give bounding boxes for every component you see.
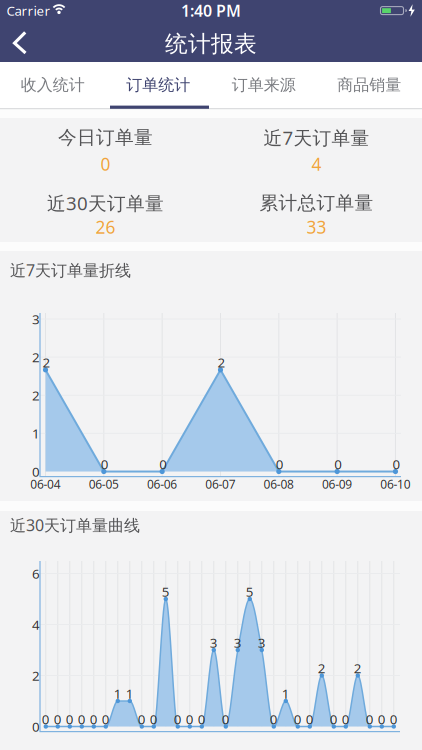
staticText: 06-10	[380, 476, 411, 492]
staticText: 06-09	[322, 476, 352, 492]
staticText: 5	[246, 583, 254, 600]
staticText: 4	[32, 616, 40, 633]
staticText: 0	[390, 710, 398, 728]
staticText: 0	[66, 710, 74, 728]
staticText: 0	[334, 455, 342, 473]
staticText: 今日订单量	[58, 126, 153, 149]
staticText: 33	[306, 215, 326, 238]
staticText: 订单来源	[232, 75, 296, 95]
staticText: 0	[42, 710, 50, 728]
button[interactable]: 订单统计	[105, 62, 211, 108]
button[interactable]: Back	[1, 26, 41, 62]
staticText: 2	[42, 353, 50, 371]
staticText: 06-06	[147, 476, 177, 492]
staticText: 6	[32, 565, 40, 582]
staticText: 5	[162, 583, 170, 600]
staticText: 2	[318, 659, 326, 677]
staticText: 3	[234, 634, 242, 651]
staticText: 统计报表	[165, 30, 257, 58]
button[interactable]: 订单来源	[211, 62, 316, 108]
staticText: 1	[282, 685, 290, 702]
staticText: 06-04	[30, 476, 61, 492]
staticText: 2	[354, 659, 362, 677]
staticText: 3	[32, 310, 40, 328]
staticText: 0	[102, 710, 110, 728]
staticText: 0	[330, 710, 338, 728]
staticText: 近7天订单量折线	[10, 259, 131, 281]
staticText: 0	[101, 455, 109, 473]
staticText: 近30天订单量	[47, 191, 164, 215]
staticText: 0	[198, 710, 206, 728]
staticText: 1	[114, 685, 122, 702]
staticText: 3	[258, 634, 266, 651]
staticText: 06-07	[205, 476, 236, 492]
staticText: 近7天订单量	[263, 125, 369, 150]
staticText: 订单统计	[126, 75, 190, 95]
staticText: 近30天订单量曲线	[10, 514, 140, 536]
staticText: 0	[270, 710, 278, 728]
staticText: 累计总订单量	[259, 191, 373, 214]
staticText: 0	[159, 455, 167, 473]
staticText: 0	[78, 710, 86, 728]
staticText: 0	[138, 710, 146, 728]
staticText: 2	[217, 353, 225, 371]
staticText: 2	[32, 667, 40, 684]
staticText: 4	[311, 152, 321, 175]
staticText: 0	[90, 710, 98, 728]
staticText: 2	[32, 386, 40, 404]
staticText: 0	[392, 455, 400, 473]
staticText: 0	[32, 718, 40, 735]
staticText: 0	[186, 710, 194, 728]
staticText: 1:40 PM	[181, 0, 241, 21]
staticText: 0	[366, 710, 374, 728]
staticText: 1	[126, 685, 134, 702]
staticText: 0	[54, 710, 62, 728]
staticText: 商品销量	[337, 75, 401, 95]
staticText: 0	[32, 463, 40, 480]
staticText: 1	[32, 424, 40, 442]
staticText: 0	[342, 710, 350, 728]
staticText: 0	[294, 710, 302, 728]
staticText: 3	[210, 634, 218, 651]
staticText: 26	[95, 215, 115, 238]
staticText: 0	[174, 710, 182, 728]
button[interactable]: 商品销量	[316, 62, 422, 108]
staticText: 0	[306, 710, 314, 728]
staticText: Carrier	[6, 2, 50, 19]
staticText: 2	[32, 348, 40, 366]
staticText: 06-05	[89, 476, 119, 492]
staticText: 0	[276, 455, 284, 473]
staticText: 收入统计	[21, 75, 85, 95]
staticText: 06-08	[264, 476, 294, 492]
button[interactable]: 收入统计	[0, 62, 105, 108]
staticText: 0	[222, 710, 230, 728]
staticText: 0	[150, 710, 158, 728]
staticText: 0	[378, 710, 386, 728]
staticText: 0	[100, 152, 110, 175]
